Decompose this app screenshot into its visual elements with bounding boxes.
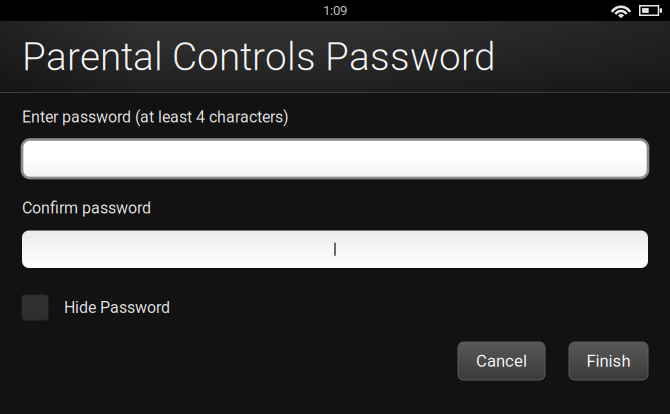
staticText: Parental Controls Password <box>22 34 495 80</box>
staticText: Finish <box>586 351 630 371</box>
staticText: 1:09 <box>323 3 347 18</box>
button[interactable]: Finish <box>569 342 648 380</box>
staticText: Hide Password <box>64 298 170 317</box>
staticText: Confirm password <box>22 199 151 217</box>
button[interactable]: Cancel <box>458 342 545 380</box>
staticText: Cancel <box>476 351 527 371</box>
staticText: Enter password (at least 4 characters) <box>22 108 289 126</box>
button[interactable]: Hide Password <box>22 295 170 320</box>
